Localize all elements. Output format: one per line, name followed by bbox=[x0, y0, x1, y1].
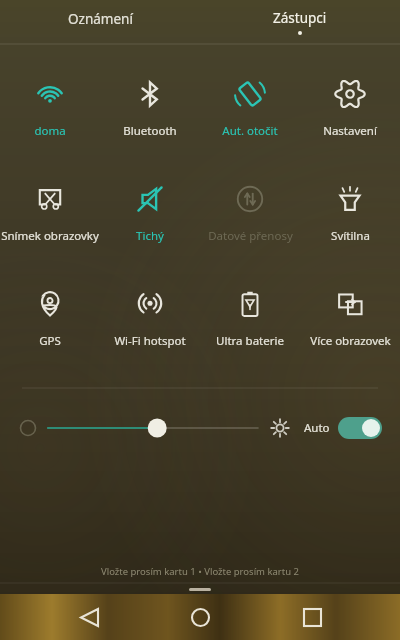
staticText: Datové přenosy bbox=[208, 228, 293, 244]
button[interactable]: Tichý bbox=[100, 164, 200, 269]
staticText: Oznámení bbox=[68, 10, 133, 28]
button[interactable]: Datové přenosy bbox=[200, 164, 300, 269]
button[interactable]: Ultra baterie bbox=[200, 269, 300, 374]
button[interactable]: Home bbox=[177, 594, 223, 640]
button[interactable]: Auto bbox=[304, 417, 382, 439]
staticText: Zástupci bbox=[273, 9, 327, 27]
button[interactable]: doma bbox=[0, 59, 100, 164]
button[interactable]: Back bbox=[66, 594, 112, 640]
staticText: Tichý bbox=[136, 228, 164, 244]
staticText: Aut. otočit bbox=[222, 123, 278, 139]
button[interactable]: GPS bbox=[0, 269, 100, 374]
button[interactable] bbox=[48, 413, 258, 443]
button[interactable]: Více obrazovek bbox=[300, 269, 400, 374]
button[interactable]: Zástupci bbox=[200, 0, 400, 44]
staticText: Více obrazovek bbox=[310, 333, 391, 349]
staticText: doma bbox=[34, 123, 66, 139]
staticText: Svítilna bbox=[331, 228, 370, 244]
staticText: GPS bbox=[39, 333, 61, 349]
button[interactable]: Aut. otočit bbox=[200, 59, 300, 164]
staticText: Bluetooth bbox=[123, 123, 177, 139]
staticText: Vložte prosím kartu 1 • Vložte prosím ka… bbox=[101, 565, 299, 578]
staticText: Wi-Fi hotspot bbox=[114, 333, 186, 349]
button[interactable]: Bluetooth bbox=[100, 59, 200, 164]
button[interactable]: Wi-Fi hotspot bbox=[100, 269, 200, 374]
staticText: Snímek obrazovky bbox=[1, 228, 99, 244]
button[interactable]: Snímek obrazovky bbox=[0, 164, 100, 269]
staticText: Auto bbox=[304, 420, 330, 436]
staticText: Ultra baterie bbox=[216, 333, 284, 349]
staticText: Nastavení bbox=[323, 123, 377, 139]
button[interactable]: Oznámení bbox=[0, 0, 200, 44]
button[interactable]: Recent apps bbox=[289, 594, 335, 640]
button[interactable]: Svítilna bbox=[300, 164, 400, 269]
button[interactable]: Nastavení bbox=[300, 59, 400, 164]
